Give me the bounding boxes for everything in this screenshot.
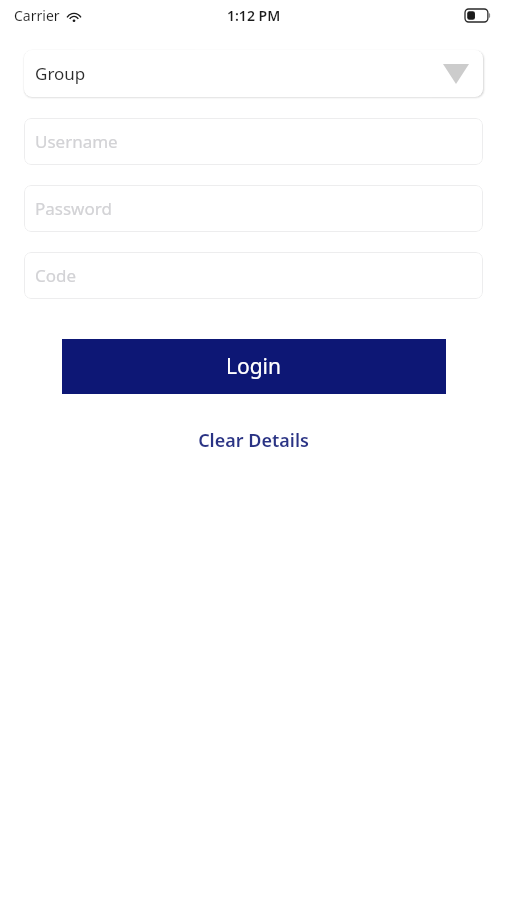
button[interactable]: Password xyxy=(24,185,483,232)
staticText: Login xyxy=(226,352,282,381)
staticText: Carrier xyxy=(14,6,60,25)
staticText: Clear Details xyxy=(198,428,309,453)
staticText: Code xyxy=(35,264,77,287)
button[interactable]: Login xyxy=(62,339,446,394)
staticText: Group xyxy=(35,62,86,85)
staticText: 1:12 PM xyxy=(227,6,281,25)
staticText: Password xyxy=(35,197,112,220)
button[interactable]: Clear Details xyxy=(0,424,507,457)
staticText: Username xyxy=(35,130,118,153)
button[interactable]: Group xyxy=(24,50,483,97)
button[interactable]: Username xyxy=(24,118,483,165)
button[interactable]: Code xyxy=(24,252,483,299)
